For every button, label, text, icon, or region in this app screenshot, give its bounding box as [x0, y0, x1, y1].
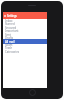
staticText: Trash	[5, 46, 13, 49]
staticText: Inbox	[5, 19, 13, 22]
button[interactable]: Snoozed	[3, 26, 47, 29]
button[interactable]: Spam	[3, 43, 47, 46]
staticText: Important	[5, 29, 19, 32]
staticText: Spam	[5, 43, 13, 46]
staticText: Starred	[5, 22, 15, 25]
button[interactable]: Starred	[3, 22, 47, 25]
button[interactable]: Home	[29, 89, 36, 96]
button[interactable]: Important	[3, 29, 47, 32]
staticText: Drafts	[5, 36, 14, 39]
button[interactable]: Drafts	[3, 36, 47, 39]
button[interactable]: All mail	[3, 39, 47, 44]
staticText: All mail	[5, 40, 15, 44]
staticText: Snoozed	[5, 26, 17, 29]
staticText: Settings	[7, 14, 17, 17]
staticText: Categories	[5, 50, 20, 53]
staticText: Sent	[5, 33, 11, 36]
button[interactable]: Navigate up	[3, 12, 6, 19]
button[interactable]: Sent	[3, 33, 47, 36]
button[interactable]: Navigate up	[3, 12, 47, 19]
button[interactable]: Categories	[3, 50, 47, 53]
button[interactable]: Inbox	[3, 19, 47, 22]
button[interactable]: Trash	[3, 46, 47, 49]
